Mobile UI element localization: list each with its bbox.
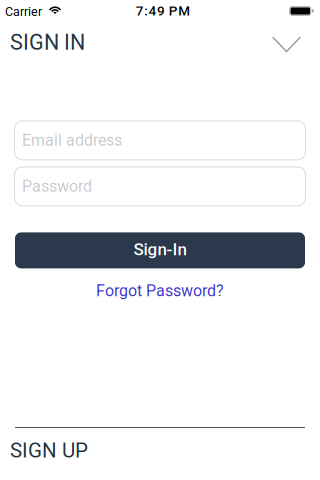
button[interactable]: SIGN IN [0,21,320,55]
button[interactable]: Sign-In [15,232,305,268]
button[interactable]: Password [14,166,306,206]
staticText: Email address [22,131,122,150]
button[interactable]: Email address [14,120,306,160]
staticText: Sign-In [133,239,186,259]
staticText: Password [22,177,92,196]
staticText: SIGN UP [10,438,88,462]
button[interactable]: Forgot Password? [96,281,224,300]
staticText: Forgot Password? [96,281,224,300]
staticText: Carrier [5,4,42,19]
button[interactable]: SIGN UP [10,428,88,462]
staticText: 7:49 PM [136,3,190,19]
staticText: SIGN IN [10,30,85,55]
